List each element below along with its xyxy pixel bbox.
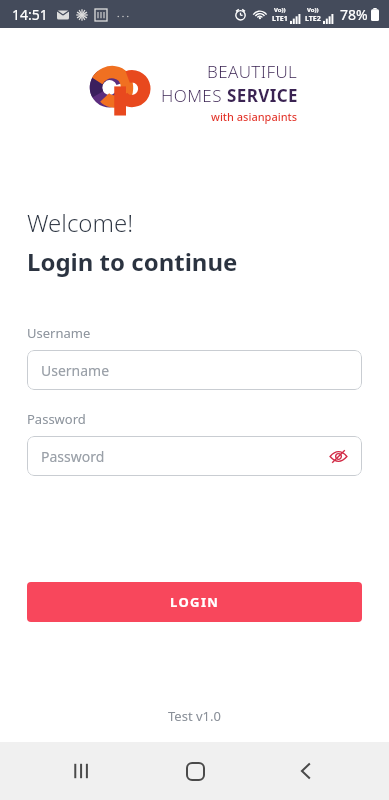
- staticText: Password: [27, 410, 86, 428]
- button[interactable]: Home: [167, 743, 223, 799]
- staticText: Welcome!: [27, 206, 134, 239]
- staticText: LOGIN: [170, 593, 220, 611]
- staticText: Username: [41, 361, 110, 380]
- button[interactable]: Recent apps: [55, 743, 111, 799]
- staticText: with asianpaints: [211, 109, 298, 124]
- button[interactable]: Username: [27, 350, 362, 390]
- staticText: Vo)): [307, 6, 319, 14]
- button[interactable]: Show password: [326, 444, 350, 468]
- staticText: HOMES: [161, 84, 227, 107]
- staticText: Vo)): [274, 6, 286, 14]
- button[interactable]: Password: [27, 436, 362, 476]
- staticText: Password: [41, 447, 105, 466]
- staticText: Test v1.0: [168, 707, 221, 725]
- staticText: 14:51: [12, 5, 48, 24]
- staticText: BEAUTIFUL: [207, 60, 298, 83]
- staticText: LTE1: [272, 14, 288, 24]
- staticText: SERVICE: [227, 84, 298, 107]
- button[interactable]: LOGIN: [27, 582, 362, 622]
- staticText: LTE2: [305, 14, 321, 24]
- button[interactable]: Back: [278, 743, 334, 799]
- staticText: Login to continue: [27, 245, 238, 278]
- staticText: 78%: [340, 5, 368, 24]
- staticText: Username: [27, 324, 91, 342]
